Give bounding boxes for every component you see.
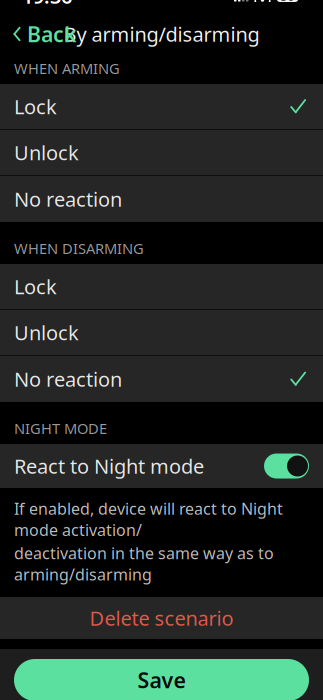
staticText: WHEN DISARMING [14,238,144,258]
button[interactable]: React to Night mode [0,444,323,488]
staticText: NIGHT MODE [14,418,107,438]
staticText: Lock [14,273,57,300]
button[interactable]: Save [14,659,309,700]
button[interactable]: Unlock [0,310,323,356]
staticText: Delete scenario [89,605,233,631]
staticText: Unlock [14,139,79,166]
staticText: Lock [14,93,57,120]
staticText: Unlock [14,319,79,346]
staticText: Save [137,666,185,694]
button[interactable]: Lock [0,84,323,130]
staticText: WHEN ARMING [14,58,120,78]
staticText: 19:36 [22,0,72,9]
staticText: No reaction [14,366,122,392]
button[interactable]: No reaction [0,176,323,222]
staticText: deactivation in the same way as to armin… [14,542,274,585]
staticText: No reaction [14,186,122,212]
staticText: React to Night mode [14,453,204,479]
button[interactable]: Delete scenario [0,597,323,639]
button[interactable]: Lock [0,264,323,310]
staticText: Back [27,20,77,48]
staticText: 50 [280,0,294,4]
button[interactable]: No reaction [0,356,323,402]
button[interactable]: Back [0,14,89,54]
staticText: If enabled, device will react to Night m… [14,498,283,540]
button[interactable]: Unlock [0,130,323,176]
staticText: By arming/disarming [63,21,259,47]
